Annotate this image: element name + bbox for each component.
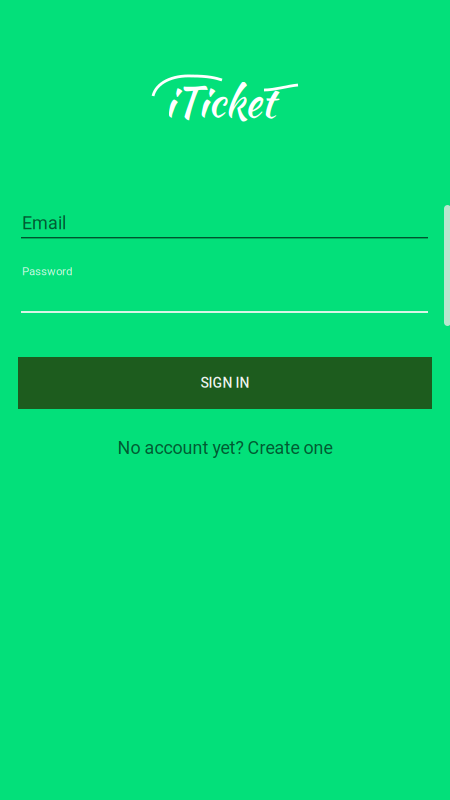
button[interactable]: SIGN IN — [18, 357, 432, 409]
staticText: No account yet? Create one — [117, 437, 332, 458]
button[interactable]: No account yet? Create one — [0, 437, 450, 459]
staticText: Email — [22, 212, 66, 234]
staticText: iTicket — [164, 72, 275, 132]
staticText: Password — [22, 265, 72, 278]
staticText: SIGN IN — [200, 375, 249, 391]
